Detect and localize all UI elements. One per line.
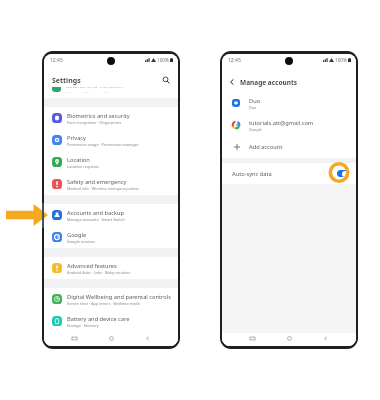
staticText: Medical info · Wireless emergency alerts xyxy=(67,186,139,191)
button[interactable]: Duo xyxy=(222,92,356,114)
staticText: Battery and device care xyxy=(67,315,130,323)
staticText: Auto-sync data xyxy=(232,170,272,178)
button[interactable]: Back xyxy=(141,333,154,343)
staticText: Accounts and backup xyxy=(67,209,124,217)
button[interactable]: tutorials.att@gmail.com xyxy=(222,114,356,136)
button[interactable]: Auto-sync data xyxy=(222,163,356,184)
staticText: tutorials.att@gmail.com xyxy=(249,119,314,127)
button[interactable]: Home xyxy=(283,333,296,343)
staticText: Permission usage · Permission manager xyxy=(67,142,139,147)
staticText: Duo xyxy=(249,97,261,105)
staticText: Location xyxy=(67,156,90,164)
staticText: 100% xyxy=(335,57,347,63)
staticText: Privacy xyxy=(67,134,86,142)
staticText: Sounds and vibration xyxy=(66,87,123,90)
button[interactable]: Privacy xyxy=(44,129,178,151)
staticText: Safety and emergency xyxy=(67,178,127,186)
button[interactable]: Battery and device care xyxy=(44,310,178,332)
button[interactable]: Location xyxy=(44,151,178,173)
staticText: Google xyxy=(249,127,262,132)
button[interactable]: Biometrics and security xyxy=(44,107,178,129)
staticText: Location requests xyxy=(67,164,99,169)
staticText: Duo xyxy=(249,105,257,110)
staticText: Advanced features xyxy=(67,262,117,270)
staticText: Screen time · App timers · Bedtime mode xyxy=(67,301,140,306)
staticText: Manage accounts · Smart Switch xyxy=(67,217,125,222)
button[interactable]: Back xyxy=(319,333,332,343)
staticText: 12:45 xyxy=(228,57,241,64)
button[interactable]: Recents xyxy=(68,333,81,343)
staticText: Settings xyxy=(52,76,81,86)
button[interactable]: Home xyxy=(105,333,118,343)
staticText: Google xyxy=(67,231,87,239)
staticText: Volume · Vibration · Ringtone xyxy=(66,91,122,93)
staticText: Biometrics and security xyxy=(67,112,130,120)
button[interactable]: Add account xyxy=(222,136,356,158)
staticText: Google services xyxy=(67,239,96,244)
staticText: Face recognition · Fingerprints xyxy=(67,120,122,125)
button[interactable]: Navigate up xyxy=(227,77,237,87)
button[interactable]: Accounts and backup xyxy=(44,204,178,226)
staticText: Add account xyxy=(249,143,283,151)
staticText: 12:45 xyxy=(50,57,63,64)
staticText: Digital Wellbeing and parental controls xyxy=(67,293,171,301)
staticText: Manage accounts xyxy=(240,78,298,87)
button[interactable]: Advanced features xyxy=(44,257,178,279)
button[interactable]: Recents xyxy=(246,333,259,343)
staticText: Android Auto · Labs · Bixby routines xyxy=(67,270,131,275)
button[interactable]: Digital Wellbeing and parental controls xyxy=(44,288,178,310)
button[interactable]: Google xyxy=(44,226,178,248)
staticText: 100% xyxy=(157,57,169,63)
button[interactable]: Safety and emergency xyxy=(44,173,178,195)
button[interactable]: Search xyxy=(160,74,171,85)
staticText: Storage · Memory xyxy=(67,323,99,328)
